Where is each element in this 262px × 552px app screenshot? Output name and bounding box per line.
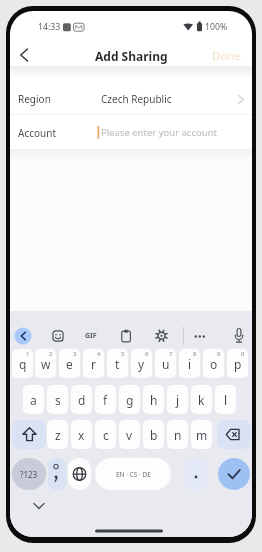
button[interactable]: c	[95, 420, 116, 449]
staticText: b	[150, 427, 158, 443]
staticText: c	[103, 427, 109, 443]
button[interactable]: v	[119, 420, 140, 449]
button[interactable]: w	[35, 349, 56, 378]
staticText: t	[115, 356, 120, 372]
staticText: GIF	[85, 331, 97, 341]
staticText: Region	[18, 92, 51, 106]
button[interactable]: j	[167, 385, 188, 414]
staticText: d	[78, 392, 86, 408]
button[interactable]: s	[47, 385, 68, 414]
staticText: 6	[145, 350, 149, 358]
button[interactable]: y	[131, 349, 152, 378]
staticText: k	[198, 392, 205, 408]
staticText: p	[234, 356, 242, 372]
button[interactable]	[185, 458, 207, 490]
button[interactable]: r	[83, 349, 104, 378]
staticText: i	[188, 356, 192, 372]
staticText: r	[91, 356, 96, 372]
staticText: v	[126, 427, 133, 443]
button[interactable]: e	[59, 349, 80, 378]
button[interactable]: b	[143, 420, 164, 449]
button[interactable]	[68, 458, 91, 490]
button[interactable]	[14, 327, 32, 345]
button[interactable]: ?123	[12, 458, 46, 490]
staticText: l	[224, 392, 228, 408]
button[interactable]: a	[23, 385, 44, 414]
button[interactable]: p	[227, 349, 248, 378]
staticText: g	[126, 392, 134, 408]
staticText: w	[41, 356, 51, 372]
staticText: 4	[97, 350, 101, 358]
staticText: 14:33	[38, 21, 61, 33]
button[interactable]: u	[155, 349, 176, 378]
staticText: a	[30, 392, 37, 408]
staticText: u	[162, 356, 170, 372]
staticText: Add Sharing	[95, 48, 168, 64]
button[interactable]: n	[167, 420, 188, 449]
staticText: 7	[169, 350, 173, 358]
button[interactable]	[12, 43, 42, 69]
button[interactable]: z	[47, 420, 68, 449]
staticText: EN · CS · DE	[116, 470, 151, 479]
button[interactable]: k	[191, 385, 212, 414]
button[interactable]: m	[191, 420, 212, 449]
button[interactable]: l	[215, 385, 236, 414]
staticText: n	[174, 427, 182, 443]
staticText: y	[138, 356, 145, 372]
button[interactable]	[217, 420, 251, 449]
button[interactable]: q	[12, 349, 33, 378]
staticText: 3	[73, 350, 77, 358]
staticText: ?123	[20, 469, 38, 480]
button[interactable]	[10, 79, 252, 114]
staticText: 1	[26, 350, 30, 358]
staticText: 9	[217, 350, 221, 358]
button[interactable]: f	[95, 385, 116, 414]
staticText: 0	[241, 350, 245, 358]
staticText: 5	[121, 350, 125, 358]
button[interactable]: i	[179, 349, 200, 378]
staticText: Czech Republic	[101, 92, 172, 106]
staticText: m	[196, 427, 208, 443]
button[interactable]	[80, 327, 102, 345]
staticText: q	[19, 356, 27, 372]
staticText: s	[55, 392, 61, 408]
staticText: e	[66, 356, 73, 372]
staticText: 8	[193, 350, 197, 358]
button[interactable]	[10, 115, 252, 150]
button[interactable]: h	[143, 385, 164, 414]
button[interactable]	[218, 458, 250, 490]
staticText: 100%	[205, 21, 228, 33]
button[interactable]	[210, 47, 250, 64]
staticText: Please enter your account	[101, 126, 217, 139]
staticText: o	[210, 356, 218, 372]
staticText: 2	[49, 350, 53, 358]
button[interactable]: g	[119, 385, 140, 414]
staticText: z	[55, 427, 61, 443]
staticText: h	[150, 392, 158, 408]
button[interactable]	[48, 458, 66, 490]
staticText: f	[103, 392, 108, 408]
staticText: Done	[212, 48, 241, 64]
button[interactable]: t	[107, 349, 128, 378]
staticText: Account	[18, 126, 57, 140]
button[interactable]: d	[71, 385, 92, 414]
button[interactable]: EN · CS · DE	[95, 458, 171, 490]
button[interactable]: o	[203, 349, 224, 378]
staticText: x	[78, 427, 85, 443]
button[interactable]: x	[71, 420, 92, 449]
staticText: j	[176, 392, 180, 408]
button[interactable]	[12, 420, 46, 449]
